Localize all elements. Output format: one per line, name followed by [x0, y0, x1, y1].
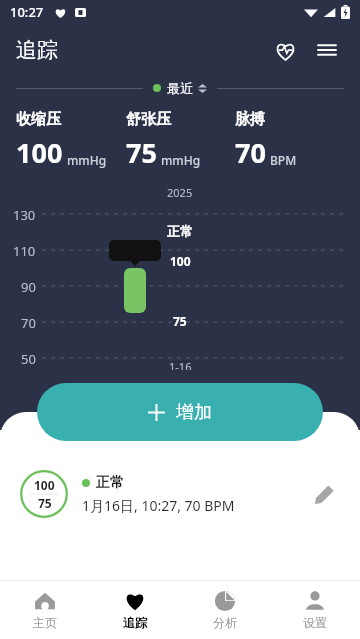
button[interactable]: 主页 [0, 581, 90, 639]
staticText: 75 [38, 495, 52, 511]
staticText: 追踪 [16, 37, 58, 63]
staticText: 收缩压 [16, 110, 61, 129]
staticText: 110 [13, 242, 36, 260]
staticText: 100 [34, 477, 55, 493]
staticText: 75 [126, 134, 157, 171]
button[interactable]: 设置 [270, 581, 360, 639]
staticText: 100 [170, 253, 191, 269]
staticText: 90 [21, 278, 36, 296]
staticText: 设置 [303, 615, 327, 630]
staticText: 最近 [167, 80, 193, 96]
staticText: 100 [16, 134, 63, 171]
staticText: 130 [13, 206, 36, 224]
staticText: mmHg [67, 152, 107, 168]
staticText: BPM [270, 152, 297, 168]
staticText: 主页 [33, 615, 57, 630]
staticText: mmHg [161, 152, 201, 168]
staticText: 70 [235, 134, 266, 171]
staticText: 1月16日, 10:27, 70 BPM [82, 496, 235, 515]
staticText: 正常 [167, 223, 193, 239]
button[interactable]: 分析 [180, 581, 270, 639]
button[interactable]: 追踪 [90, 581, 180, 639]
button[interactable]: Health stats [266, 31, 304, 69]
staticText: 脉搏 [235, 110, 265, 129]
button[interactable]: Edit [304, 474, 344, 514]
button[interactable]: 增加 [37, 383, 323, 441]
staticText: 1-16 [169, 359, 192, 370]
staticText: 50 [21, 350, 36, 368]
staticText: 75 [173, 313, 187, 329]
staticText: 分析 [213, 615, 237, 630]
staticText: 10:27 [10, 3, 44, 21]
staticText: 追踪 [123, 615, 147, 630]
staticText: 舒张压 [126, 110, 171, 129]
button[interactable]: 100 [0, 458, 360, 530]
staticText: 70 [21, 314, 36, 332]
button[interactable]: Menu [308, 31, 346, 69]
button[interactable]: 最近 [143, 80, 217, 96]
staticText: 正常 [96, 474, 124, 492]
staticText: 2025 [167, 185, 193, 200]
staticText: 增加 [176, 401, 212, 424]
